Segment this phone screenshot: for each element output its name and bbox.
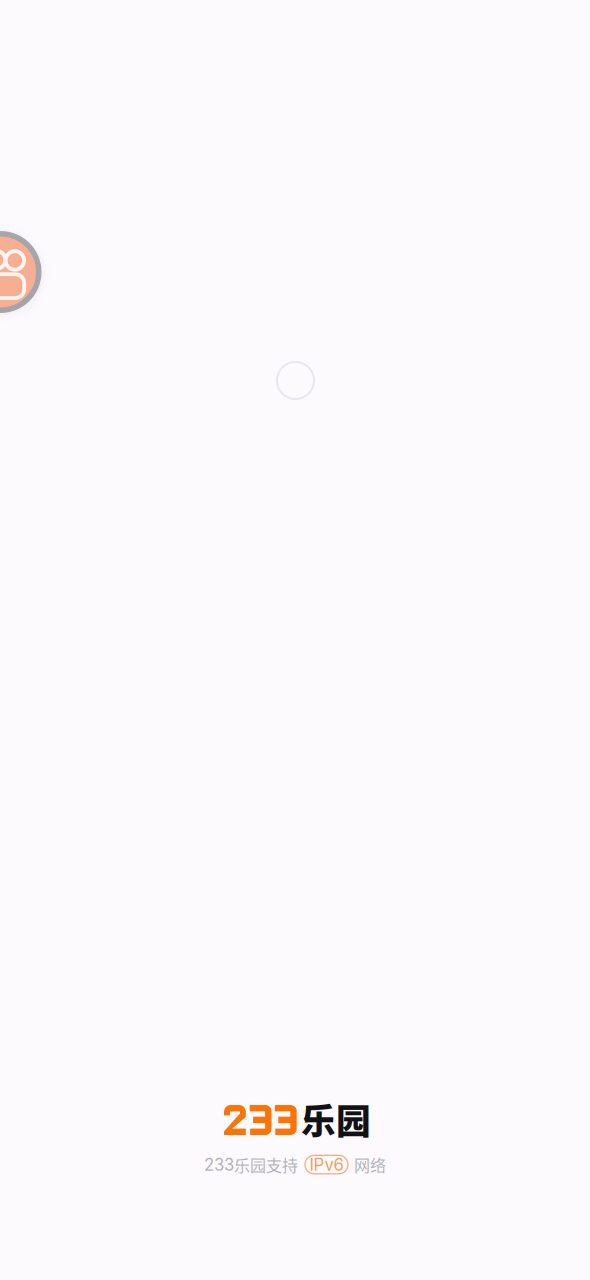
button[interactable]: 233 assistant: [0, 231, 41, 313]
staticText: 网络: [354, 1153, 386, 1176]
staticText: 乐园支持: [234, 1153, 298, 1176]
staticText: 乐园: [301, 1094, 371, 1144]
staticText: 233: [204, 1154, 234, 1175]
staticText: IPv6: [309, 1154, 343, 1175]
